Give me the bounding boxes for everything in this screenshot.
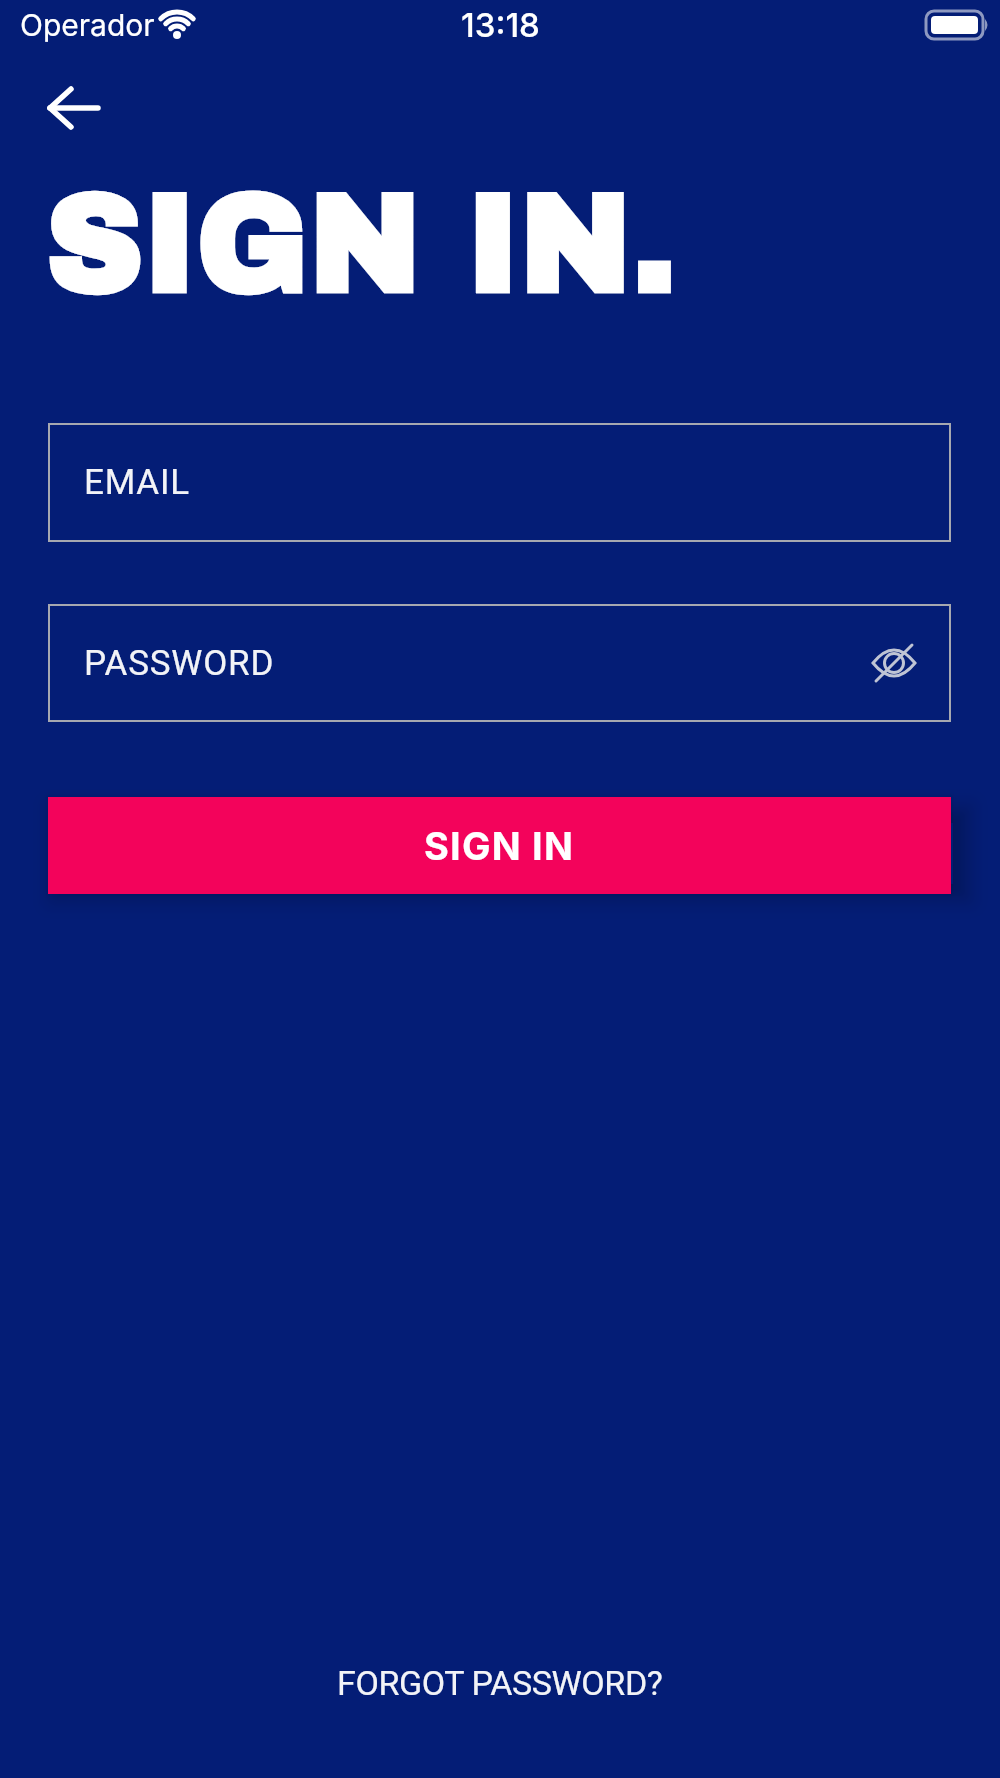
button[interactable]: PASSWORD xyxy=(48,604,951,722)
staticText: PASSWORD xyxy=(84,643,275,684)
staticText: SIGN IN xyxy=(424,823,575,869)
button[interactable]: EMAIL xyxy=(48,423,951,542)
staticText: EMAIL xyxy=(84,462,190,503)
staticText: 13:18 xyxy=(461,5,540,45)
button[interactable] xyxy=(46,86,106,130)
staticText: FORGOT PASSWORD? xyxy=(337,1663,663,1703)
button[interactable] xyxy=(869,639,919,687)
button[interactable]: FORGOT PASSWORD? xyxy=(337,1663,663,1703)
staticText: SIGN IN. xyxy=(46,167,677,320)
button[interactable]: SIGN IN xyxy=(48,797,951,894)
staticText: Operador xyxy=(20,7,155,43)
